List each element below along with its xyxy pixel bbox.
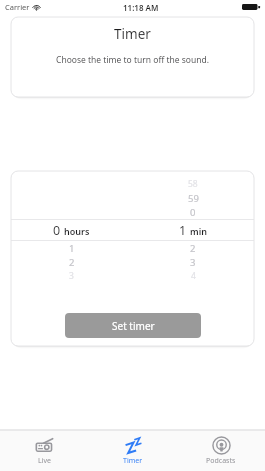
staticText: 3 <box>190 256 196 269</box>
button[interactable]: Live <box>0 431 89 471</box>
staticText: 58 <box>188 178 198 190</box>
button[interactable]: Set timer <box>65 313 201 338</box>
staticText: Timer <box>114 25 151 43</box>
staticText: hours <box>64 225 90 237</box>
staticText: 59 <box>188 192 199 205</box>
staticText: 1 <box>179 222 187 239</box>
staticText: Timer <box>123 456 143 466</box>
staticText: 3 <box>69 270 74 282</box>
staticText: 11:18 AM <box>123 2 159 13</box>
staticText: 4 <box>191 270 196 282</box>
staticText: Choose the time to turn off the sound. <box>56 54 209 66</box>
staticText: 1 <box>69 242 75 255</box>
button[interactable]: 0 <box>11 219 254 241</box>
staticText: 0 <box>53 222 61 239</box>
staticText: Set timer <box>112 319 155 333</box>
staticText: 0 <box>190 206 196 219</box>
staticText: min <box>190 225 207 237</box>
staticText: 2 <box>190 242 196 255</box>
button[interactable]: Timer <box>89 431 177 471</box>
staticText: 2 <box>69 256 75 269</box>
staticText: Carrier <box>5 2 30 12</box>
staticText: Podcasts <box>206 456 236 466</box>
button[interactable]: Podcasts <box>177 431 265 471</box>
staticText: Live <box>38 456 51 466</box>
